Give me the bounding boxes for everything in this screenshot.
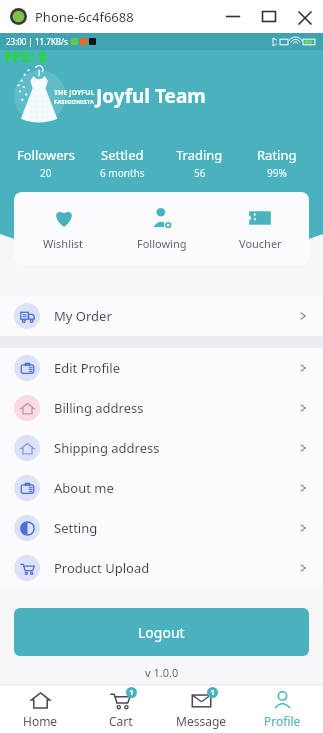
staticText: Voucher (239, 236, 282, 251)
staticText: Billing address (54, 399, 144, 417)
staticText: Wishlist (43, 236, 84, 251)
staticText: 1 (210, 688, 215, 698)
button[interactable]: Profile (242, 685, 323, 733)
staticText: 1 (129, 688, 134, 698)
button[interactable]: Voucher (211, 202, 309, 255)
button[interactable]: Product Upload (0, 548, 323, 588)
staticText: Setting (54, 519, 98, 537)
staticText: 6 months (100, 166, 145, 180)
staticText: 99% (267, 166, 287, 180)
staticText: THE JOYFUL (54, 88, 95, 98)
button[interactable]: My Order (0, 296, 323, 336)
staticText: Phone-6c4f6688 (35, 8, 134, 26)
button[interactable]: Following (113, 202, 211, 255)
staticText: Home (23, 713, 58, 729)
button[interactable]: Setting (0, 508, 323, 548)
staticText: Message (176, 713, 227, 729)
button[interactable]: Home (0, 685, 80, 733)
staticText: 20 (40, 166, 52, 180)
button[interactable]: Wishlist (14, 202, 113, 255)
staticText: Followers (17, 146, 76, 164)
button[interactable]: Logout (14, 608, 309, 656)
button[interactable]: About me (0, 468, 323, 508)
staticText: FASHIONISTA (54, 98, 95, 106)
staticText: Trading (176, 146, 223, 164)
staticText: v 1.0.0 (145, 665, 179, 680)
button[interactable]: Billing address (0, 388, 323, 428)
button[interactable]: Shipping address (0, 428, 323, 468)
staticText: About me (54, 479, 114, 497)
staticText: Settled (101, 146, 144, 164)
staticText: Logout (138, 623, 185, 642)
staticText: 56 (194, 166, 206, 180)
staticText: Profile (264, 713, 301, 729)
staticText: Following (137, 236, 187, 251)
staticText: Cart (109, 713, 133, 729)
button[interactable]: Edit Profile (0, 348, 323, 388)
staticText: Rating (257, 146, 297, 164)
staticText: My Order (54, 307, 112, 325)
staticText: Product Upload (54, 559, 150, 577)
staticText: 23:00 | 11.7KB/s (6, 36, 68, 47)
staticText: Shipping address (54, 439, 160, 457)
button[interactable]: 1 (161, 685, 242, 733)
staticText: Joyful Team (96, 83, 206, 109)
staticText: Edit Profile (54, 359, 121, 377)
button[interactable]: 1 (80, 685, 161, 733)
staticText: FPS: 8 (4, 46, 47, 66)
